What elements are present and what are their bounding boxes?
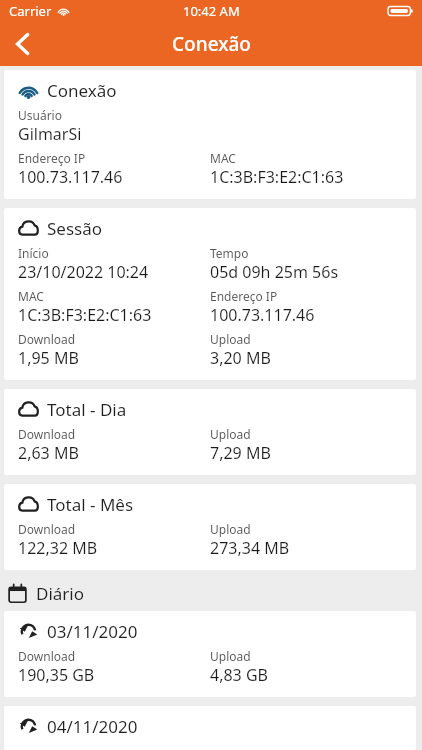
staticText: 100.73.117.46 xyxy=(18,166,123,188)
staticText: Diário xyxy=(36,582,85,605)
button[interactable]: Sessão xyxy=(4,208,416,380)
staticText: 10:42 AM xyxy=(183,2,240,20)
staticText: Início xyxy=(18,245,49,261)
staticText: 190,35 GB xyxy=(18,664,95,686)
button[interactable]: 04/11/2020 xyxy=(4,706,416,750)
staticText: Download xyxy=(18,331,76,347)
staticText: 7,29 MB xyxy=(210,442,271,464)
staticText: Download xyxy=(18,521,76,537)
staticText: Conexão xyxy=(47,79,117,102)
staticText: 122,32 MB xyxy=(18,537,98,559)
staticText: 3,20 MB xyxy=(210,347,271,369)
staticText: 1C:3B:F3:E2:C1:63 xyxy=(18,304,152,326)
staticText: Conexão xyxy=(172,31,251,57)
staticText: Upload xyxy=(210,648,251,664)
staticText: Upload xyxy=(210,426,251,442)
staticText: Total - Dia xyxy=(47,398,127,421)
staticText: 4,83 GB xyxy=(210,664,268,686)
staticText: GilmarSi xyxy=(18,123,82,145)
staticText: Download xyxy=(18,648,76,664)
button[interactable]: 03/11/2020 xyxy=(4,611,416,697)
button[interactable]: Total - Dia xyxy=(4,389,416,475)
staticText: Endereço IP xyxy=(18,150,86,166)
staticText: 1,95 MB xyxy=(18,347,79,369)
staticText: 05d 09h 25m 56s xyxy=(210,261,339,283)
staticText: 1C:3B:F3:E2:C1:63 xyxy=(210,166,344,188)
staticText: 04/11/2020 xyxy=(47,715,138,738)
staticText: Upload xyxy=(210,521,251,537)
staticText: 2,63 MB xyxy=(18,442,79,464)
staticText: MAC xyxy=(18,288,44,304)
staticText: Endereço IP xyxy=(210,288,278,304)
staticText: Tempo xyxy=(210,245,249,261)
staticText: Total - Mês xyxy=(47,493,134,516)
button[interactable]: Conexão xyxy=(4,70,416,199)
staticText: Sessão xyxy=(47,217,103,240)
staticText: Upload xyxy=(210,331,251,347)
staticText: Download xyxy=(18,426,76,442)
button[interactable]: Total - Mês xyxy=(4,484,416,570)
staticText: 273,34 MB xyxy=(210,537,290,559)
staticText: Usuário xyxy=(18,107,62,123)
staticText: Carrier xyxy=(9,2,52,20)
staticText: MAC xyxy=(210,150,236,166)
button[interactable]: Back xyxy=(0,22,44,66)
staticText: 100.73.117.46 xyxy=(210,304,315,326)
staticText: 23/10/2022 10:24 xyxy=(18,261,149,283)
staticText: 03/11/2020 xyxy=(47,620,138,643)
